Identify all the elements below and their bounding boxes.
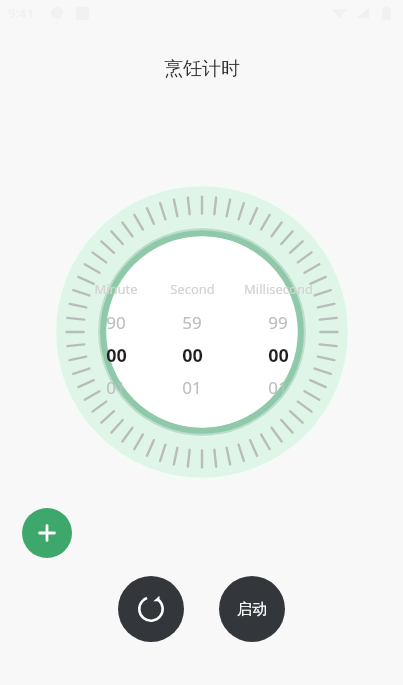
staticText: 启动 bbox=[237, 600, 267, 619]
staticText: Minute bbox=[94, 280, 138, 298]
staticText: 00 bbox=[182, 343, 203, 368]
button[interactable]: 90 bbox=[78, 311, 154, 399]
staticText: 90 bbox=[106, 311, 126, 334]
staticText: 00 bbox=[268, 343, 289, 368]
staticText: 烹饪计时 bbox=[164, 57, 240, 81]
button[interactable]: Add timer bbox=[22, 508, 72, 558]
staticText: Second bbox=[170, 280, 215, 298]
staticText: 01 bbox=[182, 376, 202, 399]
staticText: 99 bbox=[268, 311, 288, 334]
button[interactable]: 启动 bbox=[219, 576, 285, 642]
staticText: 59 bbox=[182, 311, 202, 334]
staticText: 00 bbox=[106, 343, 127, 368]
staticText: 01 bbox=[268, 376, 288, 399]
staticText: Millisecond bbox=[244, 280, 313, 298]
button[interactable]: 59 bbox=[154, 311, 230, 399]
staticText: 01 bbox=[106, 376, 126, 399]
button[interactable]: Reset bbox=[118, 576, 184, 642]
button[interactable]: 99 bbox=[230, 311, 326, 399]
